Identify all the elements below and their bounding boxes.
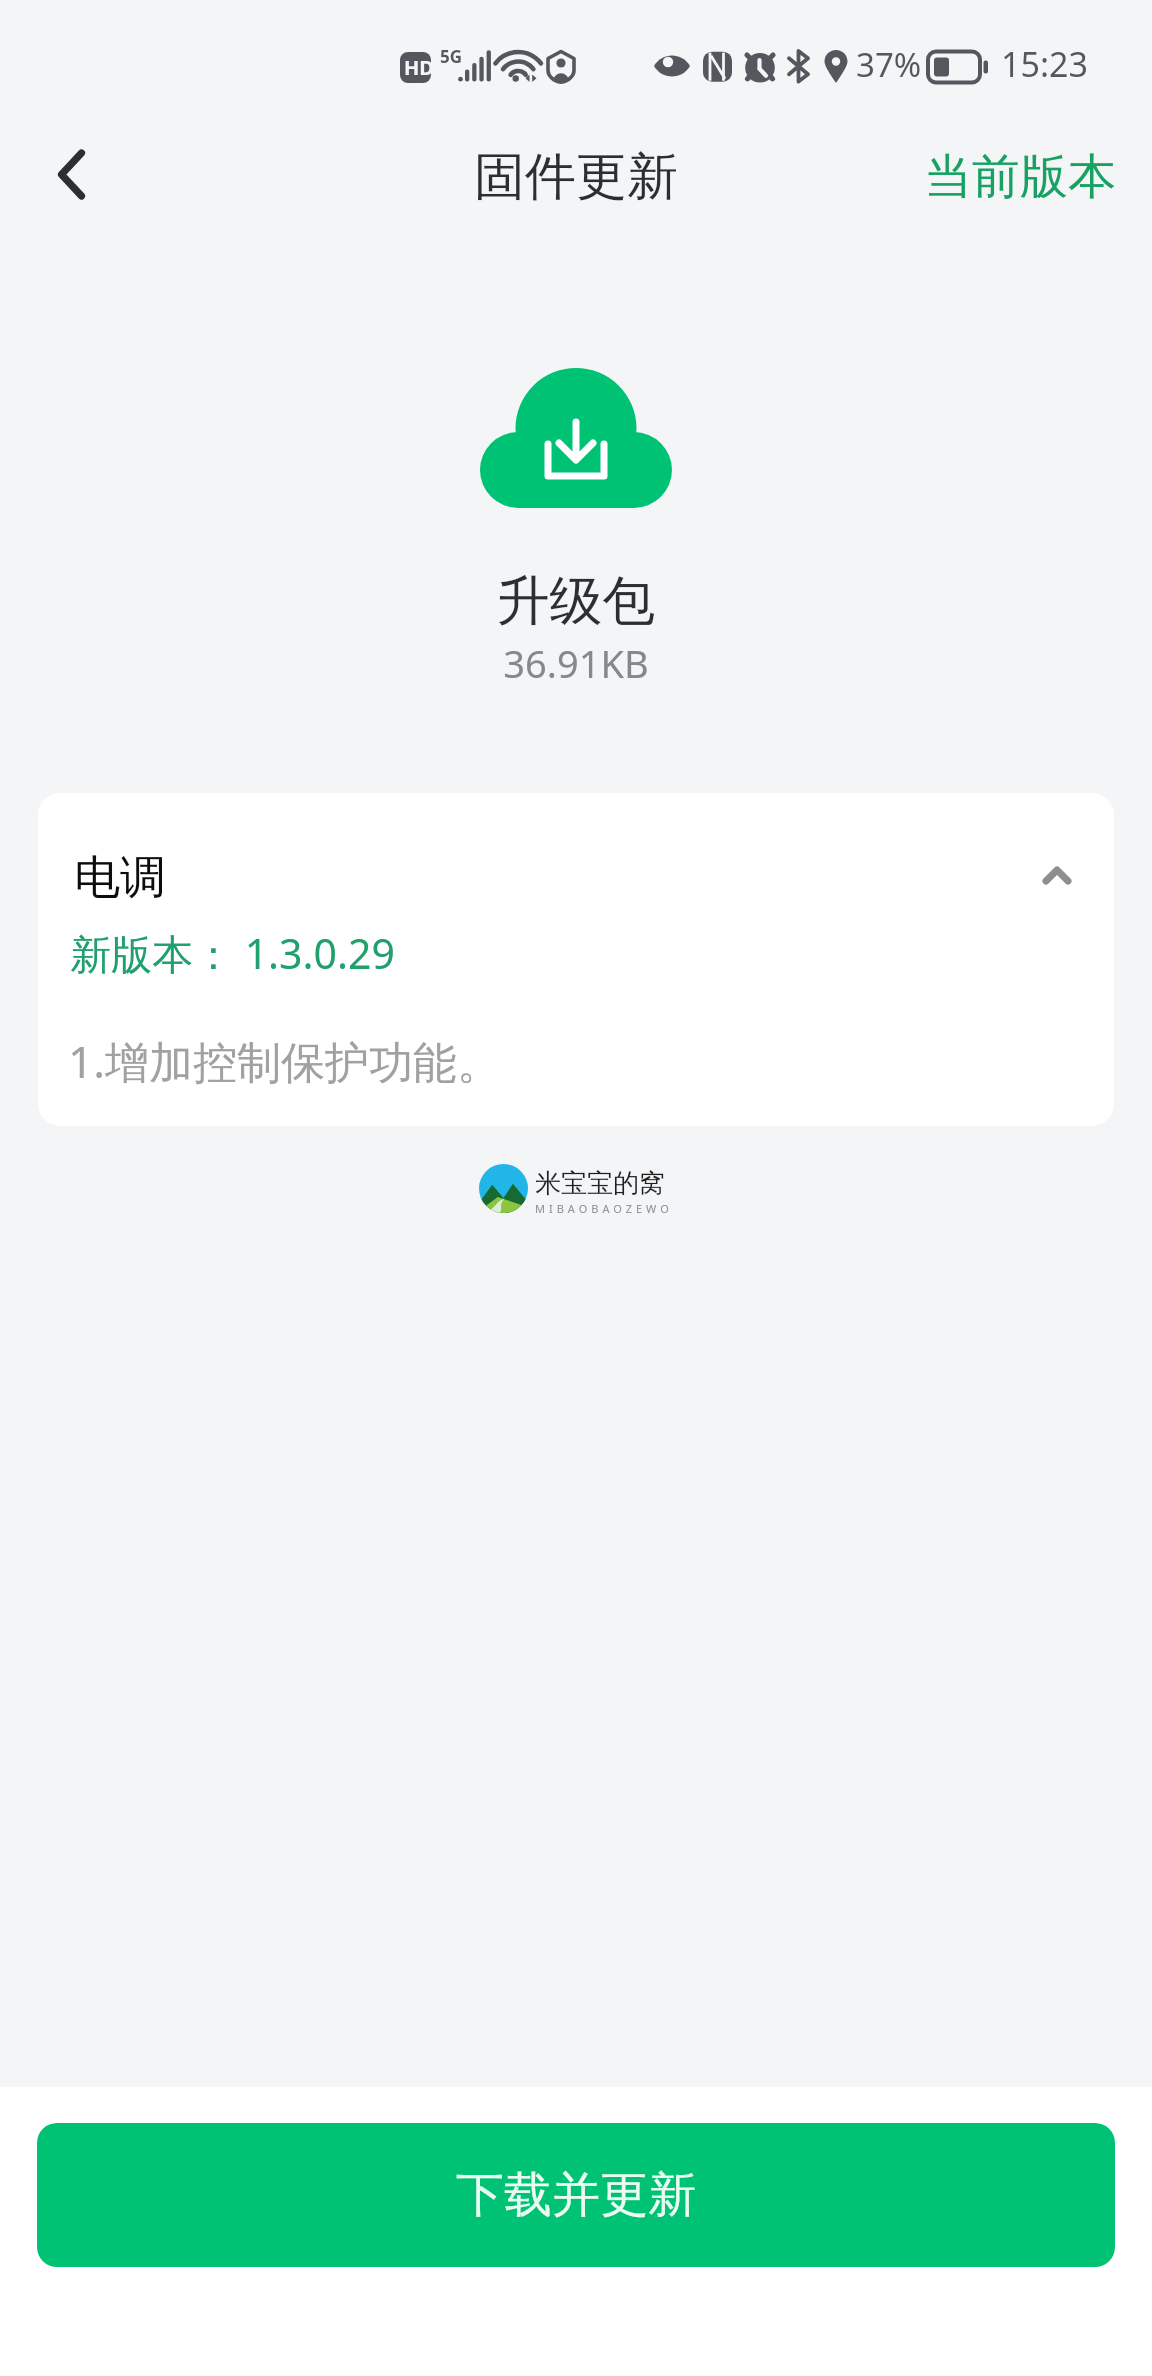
staticText: 新版本： 1.3.0.29 [70,925,395,981]
staticText: 升级包 [0,568,1152,635]
staticText: 15:23 [1001,41,1088,87]
button[interactable]: 当前版本 [924,147,1116,207]
staticText: 当前版本 [924,147,1116,207]
button[interactable]: 下载并更新 [37,2123,1115,2267]
button[interactable]: Collapse [1010,837,1090,917]
staticText: 36.91KB [0,637,1152,689]
button[interactable]: Back [15,122,125,232]
staticText: 1.增加控制保护功能。 [68,1031,501,1091]
staticText: 下载并更新 [456,2165,696,2225]
staticText: 米宝宝的窝 [535,1167,665,1200]
staticText: 37% [856,42,922,87]
staticText: 电调 [74,849,166,907]
staticText: HD [404,54,434,81]
staticText: 固件更新 [474,145,678,209]
staticText: 5G [440,45,463,68]
staticText: MIBAOBAOZEWO [535,1201,673,1216]
button[interactable]: 电调 [38,793,1114,1126]
